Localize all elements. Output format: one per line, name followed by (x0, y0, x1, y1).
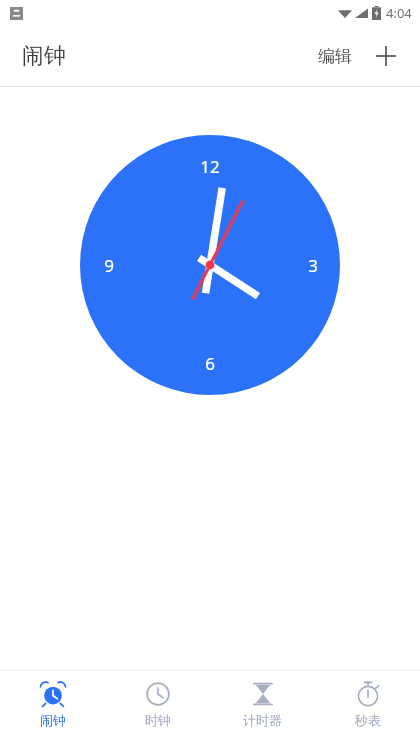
staticText: 秒表 (355, 712, 381, 728)
staticText: 编辑 (318, 46, 352, 67)
button[interactable]: 秒表 (315, 671, 420, 744)
staticText: 4:04 (386, 4, 412, 22)
staticText: 时钟 (145, 712, 171, 728)
button[interactable]: 计时器 (210, 671, 315, 744)
button[interactable]: 闹钟 (0, 671, 105, 744)
button[interactable]: 时钟 (105, 671, 210, 744)
staticText: 闹钟 (40, 712, 66, 728)
staticText: 6 (205, 352, 215, 375)
staticText: 3 (308, 254, 318, 277)
button[interactable]: 编辑 (310, 40, 360, 73)
button[interactable]: Add alarm (366, 36, 406, 76)
staticText: 闹钟 (22, 42, 66, 70)
staticText: 计时器 (243, 712, 282, 728)
staticText: 9 (104, 254, 114, 277)
staticText: 12 (200, 155, 220, 178)
